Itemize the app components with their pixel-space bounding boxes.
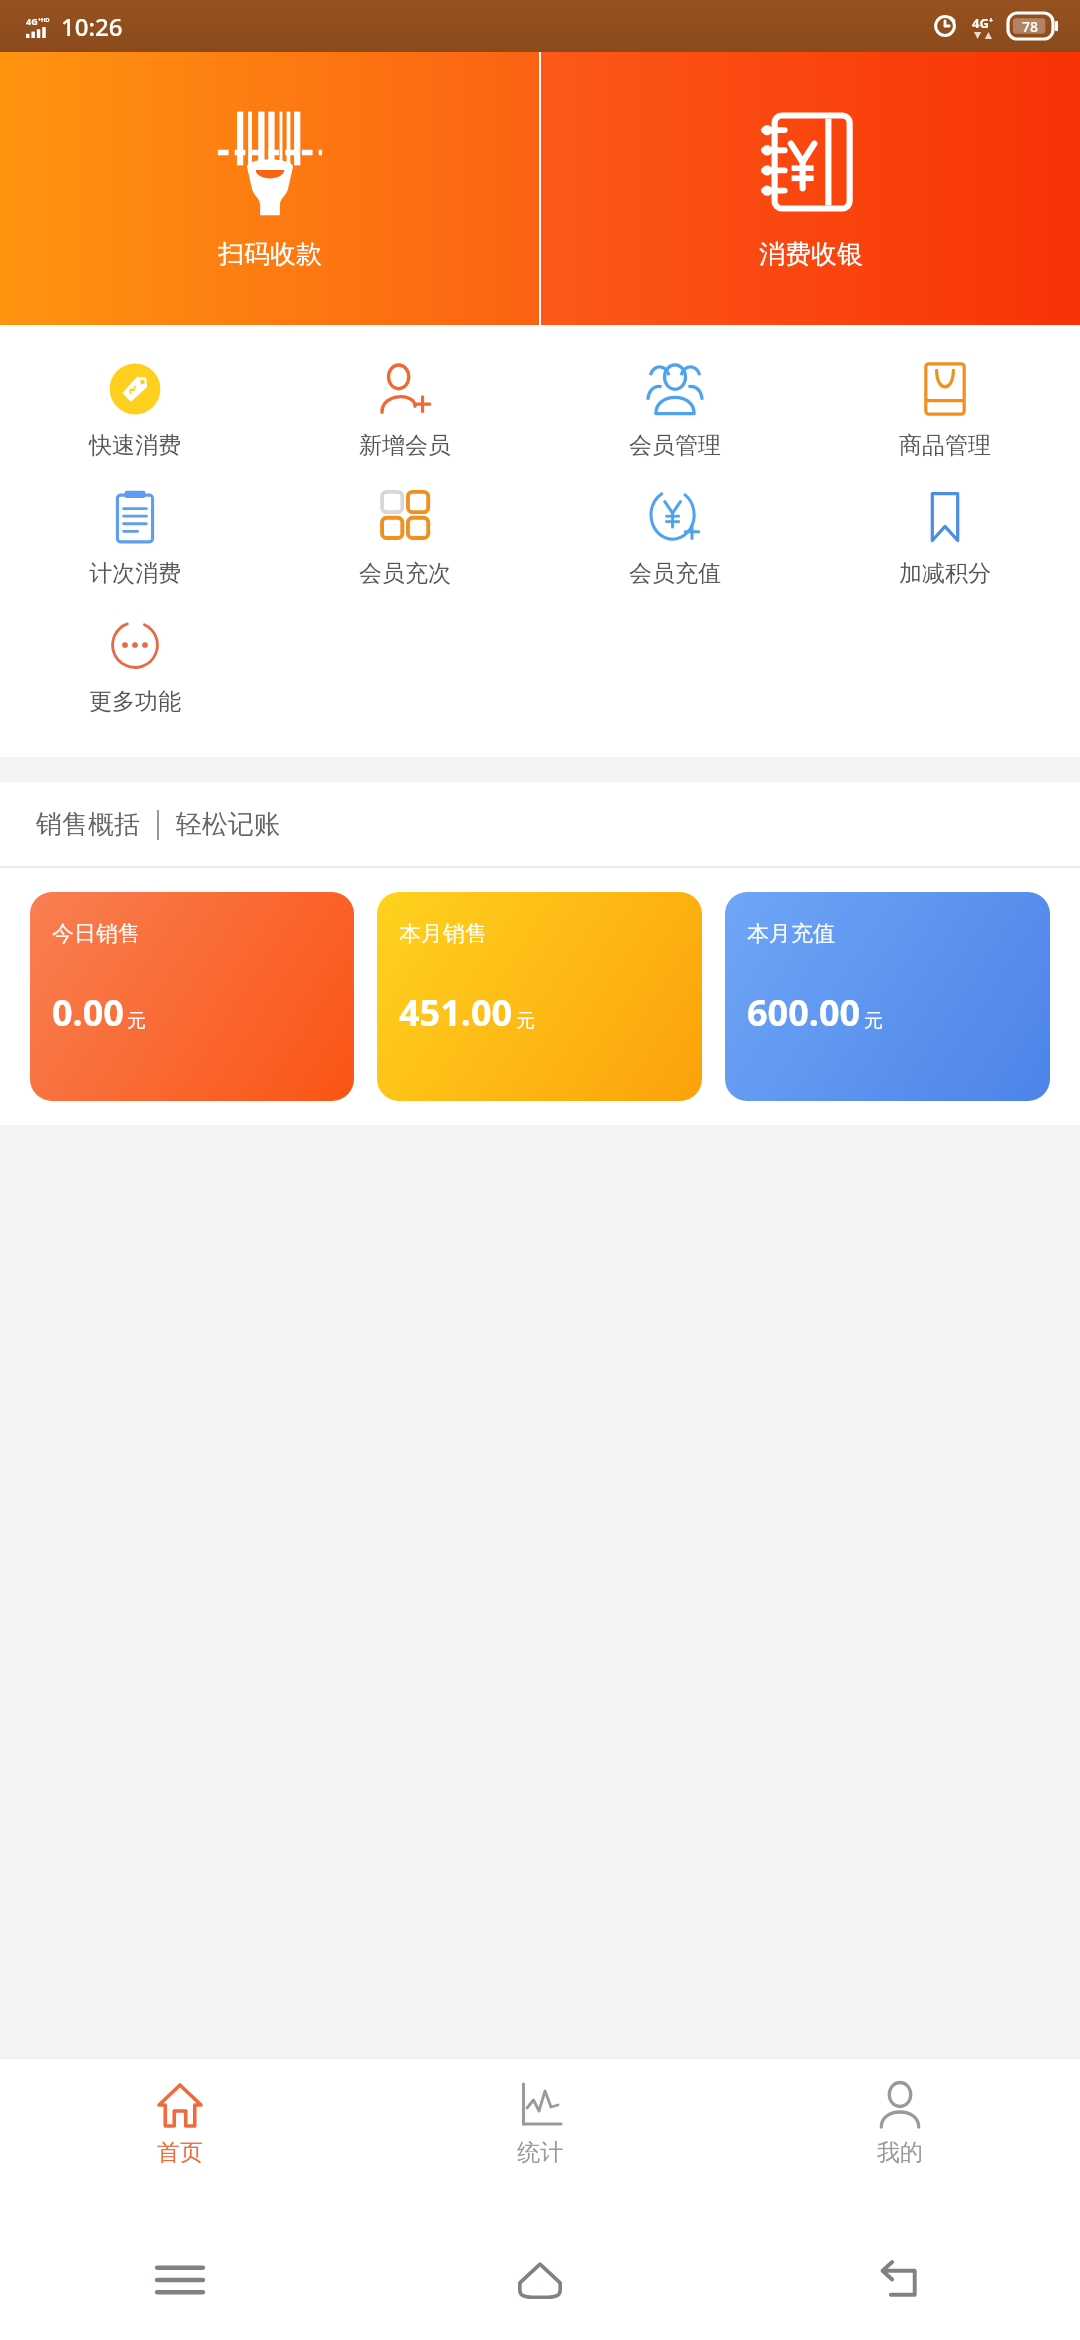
button[interactable]: 加减积分 [810,475,1080,603]
staticText: 本月充值 [747,920,835,948]
staticText: 元 [127,1009,146,1033]
staticText: 会员充值 [629,559,721,588]
button[interactable]: 会员管理 [540,347,810,475]
staticText: 更多功能 [89,687,181,716]
button[interactable]: 本月销售 [377,892,702,1101]
button[interactable]: 计次消费 [0,475,270,603]
staticText: 加减积分 [899,559,991,588]
button[interactable]: 新增会员 [270,347,540,475]
button[interactable]: Home [360,2220,720,2340]
staticText: 快速消费 [89,431,181,460]
button[interactable]: 本月充值 [725,892,1050,1101]
staticText: 新增会员 [359,431,451,460]
button[interactable]: 统计 [360,2074,720,2220]
staticText: 今日销售 [52,920,140,948]
staticText: 消费收银 [759,238,863,271]
staticText: 10:26 [61,10,123,43]
button[interactable]: 商品管理 [810,347,1080,475]
staticText: 会员管理 [629,431,721,460]
staticText: 商品管理 [899,431,991,460]
staticText: 扫码收款 [218,238,322,271]
staticText: 元 [864,1009,883,1033]
staticText: 首页 [157,2138,203,2167]
button[interactable]: Recent apps [0,2220,360,2340]
staticText: 本月销售 [399,920,487,948]
staticText: 统计 [517,2138,563,2167]
staticText: 4G⁺ᴴᴰ [26,15,50,27]
button[interactable]: 快速消费 [0,347,270,475]
button[interactable]: 消费收银 [541,52,1080,325]
staticText: 计次消费 [89,559,181,588]
staticText: 轻松记账 [176,808,280,841]
staticText: 会员充次 [359,559,451,588]
staticText: 销售概括 [36,808,140,841]
button[interactable]: 会员充值 [540,475,810,603]
staticText: 78 [1022,17,1039,36]
staticText: 我的 [877,2138,923,2167]
button[interactable]: 会员充次 [270,475,540,603]
button[interactable]: 扫码收款 [0,52,539,325]
staticText: 4G⁺ [972,14,994,32]
button[interactable]: 更多功能 [0,603,270,731]
button[interactable]: 今日销售 [30,892,354,1101]
button[interactable]: 首页 [0,2074,360,2220]
staticText: 元 [516,1009,535,1033]
staticText: 0.00 [52,988,124,1037]
button[interactable]: 我的 [720,2074,1080,2220]
button[interactable]: Back [720,2220,1080,2340]
staticText: 600.00 [747,988,861,1037]
staticText: 451.00 [399,988,513,1037]
